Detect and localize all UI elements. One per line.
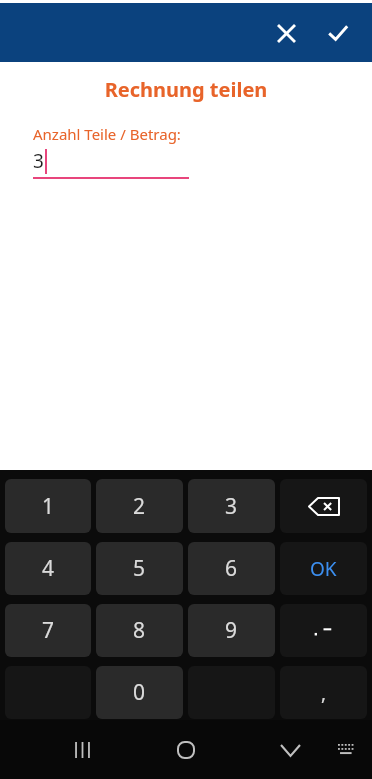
- staticText: 6: [225, 554, 238, 583]
- button[interactable]: 7: [5, 604, 91, 657]
- staticText: 1: [42, 492, 55, 521]
- button[interactable]: 3: [33, 148, 189, 179]
- button[interactable]: 2: [96, 479, 183, 533]
- button[interactable]: Bestätigen: [314, 9, 362, 57]
- staticText: 0: [133, 678, 146, 707]
- staticText: 7: [42, 616, 55, 645]
- button[interactable]: OK: [280, 542, 367, 595]
- button[interactable]: Tastatur wechseln: [326, 730, 366, 770]
- button[interactable]: 4: [5, 542, 91, 595]
- button[interactable]: Löschen: [280, 479, 367, 533]
- staticText: 4: [42, 554, 55, 583]
- button[interactable]: [280, 604, 367, 657]
- button[interactable]: 9: [188, 604, 275, 657]
- button[interactable]: Letzte Apps: [58, 726, 106, 774]
- button[interactable]: 5: [96, 542, 183, 595]
- staticText: ,: [321, 680, 327, 706]
- button[interactable]: Tastatur ausblenden: [266, 726, 314, 774]
- staticText: OK: [310, 556, 337, 582]
- staticText: 8: [133, 616, 146, 645]
- button[interactable]: 3: [188, 479, 275, 533]
- button[interactable]: 8: [96, 604, 183, 657]
- staticText: Anzahl Teile / Betrag:: [33, 124, 181, 144]
- button[interactable]: 1: [5, 479, 91, 533]
- staticText: 9: [225, 616, 238, 645]
- button[interactable]: Abbrechen: [262, 9, 310, 57]
- staticText: 3: [225, 492, 238, 521]
- staticText: 5: [133, 554, 146, 583]
- button[interactable]: Startbildschirm: [162, 726, 210, 774]
- button[interactable]: 6: [188, 542, 275, 595]
- button[interactable]: ,: [280, 666, 367, 719]
- staticText: 2: [133, 492, 146, 521]
- button[interactable]: 0: [96, 666, 183, 719]
- staticText: 3: [33, 148, 44, 174]
- staticText: Rechnung teilen: [0, 76, 372, 103]
